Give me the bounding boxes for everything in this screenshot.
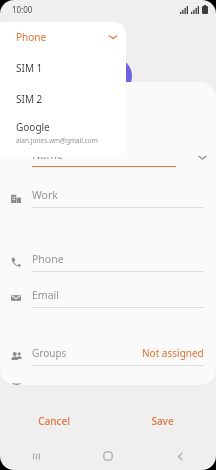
- button[interactable]: Recents: [0, 442, 72, 470]
- staticText: Not assigned: [142, 346, 204, 360]
- staticText: Cancel: [38, 414, 70, 428]
- staticText: Work: [32, 188, 58, 202]
- button[interactable]: SIM 2: [0, 83, 126, 114]
- button[interactable]: Home: [72, 442, 144, 470]
- button[interactable]: Phone: [0, 249, 216, 275]
- staticText: 10:00: [12, 4, 33, 15]
- button[interactable]: Back: [144, 442, 216, 470]
- button[interactable]: Phone: [0, 22, 126, 52]
- button[interactable]: View more: [0, 383, 216, 385]
- button[interactable]: Cancel: [0, 408, 108, 434]
- button[interactable]: Work: [0, 185, 216, 211]
- button[interactable]: Save: [108, 408, 216, 434]
- button[interactable]: Expand name: [188, 143, 216, 171]
- button[interactable]: Groups: [0, 343, 216, 369]
- button[interactable]: Google: [0, 114, 126, 157]
- staticText: Phone: [32, 252, 64, 266]
- staticText: SIM 1: [16, 61, 43, 75]
- staticText: Save: [151, 414, 174, 428]
- staticText: SIM 2: [16, 92, 43, 106]
- staticText: Email: [32, 288, 59, 302]
- button[interactable]: Name: [0, 143, 216, 171]
- staticText: Groups: [32, 346, 67, 360]
- staticText: Phone: [16, 30, 47, 44]
- button[interactable]: Email: [0, 285, 216, 311]
- staticText: Name: [32, 147, 64, 162]
- button[interactable]: SIM 1: [0, 52, 126, 83]
- staticText: Google: [16, 120, 50, 134]
- staticText: alan.jones.wm@gmail.com: [16, 136, 98, 145]
